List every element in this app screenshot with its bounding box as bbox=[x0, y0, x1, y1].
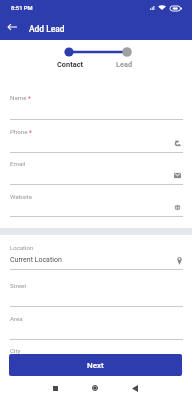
staticText: Area bbox=[10, 315, 23, 322]
staticText: 8:51 PM bbox=[11, 5, 33, 12]
staticText: Phone bbox=[10, 128, 28, 135]
button[interactable]: Home bbox=[83, 376, 107, 400]
staticText: Next bbox=[87, 361, 104, 370]
staticText: City bbox=[10, 347, 21, 354]
button[interactable]: Name bbox=[0, 88, 192, 120]
staticText: Name bbox=[10, 94, 27, 101]
staticText: * bbox=[28, 95, 31, 103]
button[interactable]: Area bbox=[0, 309, 192, 340]
button[interactable]: Website bbox=[0, 187, 192, 217]
button[interactable]: Next bbox=[9, 354, 182, 376]
staticText: Website bbox=[10, 193, 33, 200]
staticText: Current Location bbox=[10, 256, 62, 264]
button[interactable]: Back bbox=[4, 19, 20, 35]
staticText: Email bbox=[10, 160, 26, 167]
button[interactable]: Contact bbox=[52, 60, 88, 69]
button[interactable]: Lead bbox=[106, 60, 142, 69]
button[interactable]: Back bbox=[123, 376, 147, 400]
button[interactable]: City bbox=[0, 341, 192, 372]
button[interactable]: Email bbox=[0, 154, 192, 185]
staticText: * bbox=[29, 129, 32, 137]
button[interactable]: Phone bbox=[0, 122, 192, 153]
button[interactable]: Recents bbox=[43, 376, 67, 400]
button[interactable]: Street bbox=[0, 276, 192, 307]
staticText: Add Lead bbox=[29, 24, 65, 34]
staticText: Street bbox=[10, 282, 27, 289]
button[interactable]: Location bbox=[0, 238, 192, 270]
staticText: Location bbox=[10, 244, 34, 251]
